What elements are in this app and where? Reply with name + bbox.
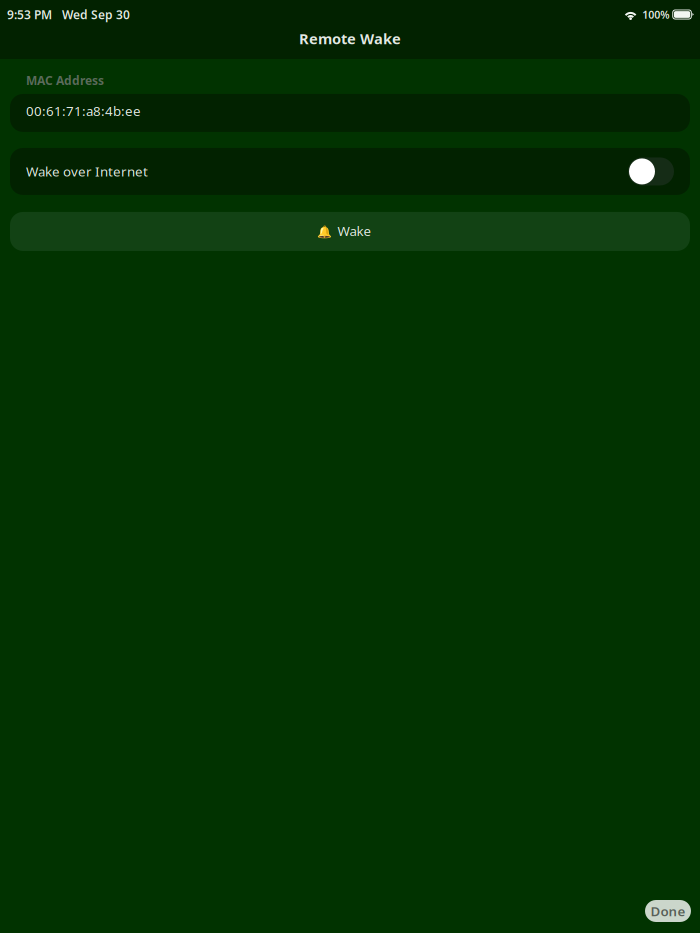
- staticText: Wed Sep 30: [62, 6, 130, 22]
- staticText: 100%: [642, 7, 669, 22]
- staticText: 00:61:71:a8:4b:ee: [26, 102, 141, 120]
- staticText: 🔔: [316, 225, 331, 238]
- staticText: Wake: [337, 222, 371, 240]
- staticText: MAC Address: [26, 72, 104, 88]
- staticText: Done: [650, 902, 685, 920]
- button[interactable]: Wake over Internet: [0, 148, 700, 195]
- staticText: Wake over Internet: [26, 163, 148, 180]
- button[interactable]: 🔔: [0, 212, 700, 251]
- staticText: 9:53 PM: [7, 6, 52, 22]
- staticText: Remote Wake: [299, 29, 401, 48]
- button[interactable]: Done: [645, 900, 691, 922]
